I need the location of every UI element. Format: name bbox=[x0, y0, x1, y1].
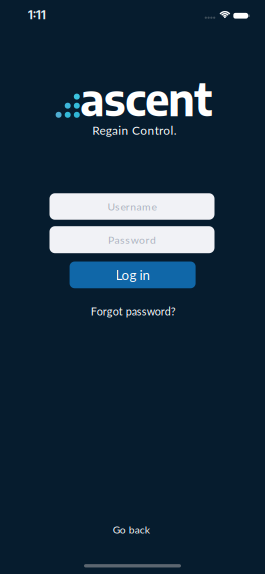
staticText: 1:11 bbox=[28, 7, 46, 22]
staticText: Regain Control. bbox=[92, 123, 177, 137]
staticText: ascent bbox=[80, 71, 213, 126]
button[interactable]: Username bbox=[49, 193, 214, 220]
staticText: Forgot password? bbox=[91, 305, 176, 318]
staticText: Username bbox=[108, 200, 156, 213]
button[interactable]: Log in bbox=[70, 261, 196, 288]
button[interactable]: Forgot password? bbox=[91, 305, 176, 318]
button[interactable]: Password bbox=[49, 226, 214, 253]
staticText: Go back bbox=[113, 523, 150, 536]
staticText: Password bbox=[108, 233, 156, 246]
button[interactable]: Go back bbox=[113, 523, 150, 536]
staticText: Log in bbox=[116, 267, 150, 283]
